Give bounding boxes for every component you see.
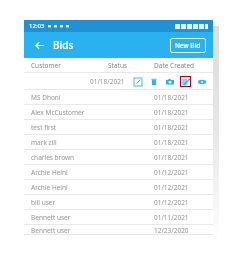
- staticText: Archie Heinl: [31, 183, 68, 192]
- staticText: Bids: [53, 38, 74, 52]
- button[interactable]: Archie Heinl: [24, 180, 213, 195]
- button[interactable]: mark zill: [24, 135, 213, 150]
- staticText: 01/12/2021: [154, 198, 189, 207]
- button[interactable]: Sign: [180, 76, 191, 87]
- staticText: 01/12/2021: [154, 168, 189, 177]
- staticText: 01/18/2021: [154, 123, 189, 132]
- button[interactable]: Delete: [148, 76, 159, 87]
- button[interactable]: test first: [24, 120, 213, 135]
- button[interactable]: MS Dhoni: [24, 90, 213, 105]
- button[interactable]: Alex McCustomer: [24, 105, 213, 120]
- staticText: test first: [31, 123, 57, 132]
- staticText: Date Created: [154, 61, 195, 70]
- button[interactable]: Back: [31, 37, 47, 53]
- staticText: 12:03: [29, 22, 45, 30]
- button[interactable]: Bennett user: [24, 210, 213, 225]
- staticText: 01/11/2021: [154, 213, 189, 222]
- staticText: 01/18/2021: [154, 108, 189, 117]
- staticText: Customer: [31, 61, 61, 70]
- staticText: bill user: [31, 198, 56, 207]
- button[interactable]: Archie Heinl: [24, 165, 213, 180]
- staticText: 01/18/2021: [154, 138, 189, 147]
- staticText: Status: [108, 61, 128, 70]
- button[interactable]: Edit: [132, 76, 143, 87]
- staticText: 12/23/2020: [154, 226, 189, 235]
- staticText: mark zill: [31, 138, 57, 147]
- button[interactable]: bill user: [24, 195, 213, 210]
- button[interactable]: Bennett user: [24, 225, 213, 235]
- staticText: Archie Heinl: [31, 168, 68, 177]
- button[interactable]: View: [196, 76, 207, 87]
- staticText: 01/18/2021: [90, 77, 125, 86]
- staticText: 01/18/2021: [154, 93, 189, 102]
- staticText: Alex McCustomer: [31, 108, 85, 117]
- button[interactable]: Photos: [164, 76, 175, 87]
- staticText: 01/18/2021: [154, 153, 189, 162]
- button[interactable]: New Bid: [170, 38, 206, 53]
- staticText: New Bid: [175, 41, 201, 50]
- staticText: Bennett user: [31, 226, 71, 235]
- staticText: Bennett user: [31, 213, 71, 222]
- staticText: 01/12/2021: [154, 183, 189, 192]
- staticText: charles brown: [31, 153, 75, 162]
- button[interactable]: charles brown: [24, 150, 213, 165]
- staticText: MS Dhoni: [31, 93, 61, 102]
